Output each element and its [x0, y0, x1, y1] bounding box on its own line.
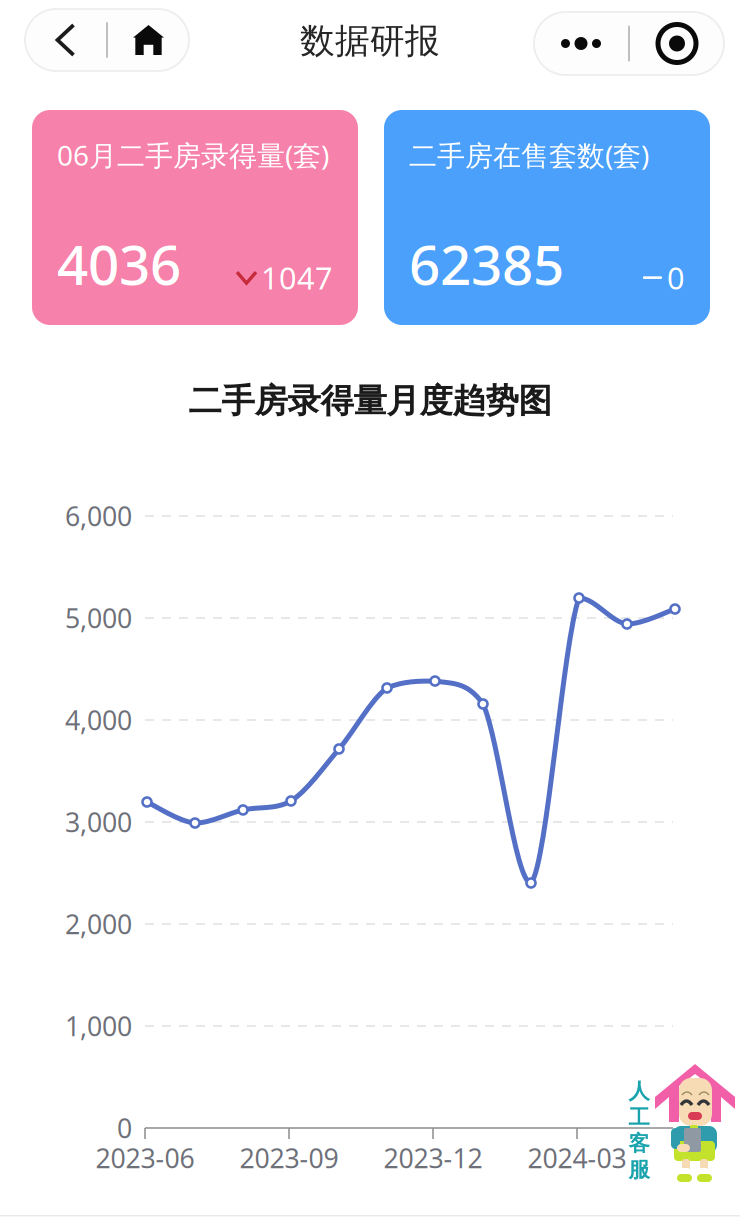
button[interactable]: 返回上一页 — [25, 9, 189, 71]
staticText: 2024-03 — [527, 1140, 626, 1176]
staticText: 6,000 — [65, 498, 132, 534]
staticText: 2,000 — [65, 906, 132, 942]
staticText: 0 — [117, 1110, 132, 1146]
button[interactable]: 人工客服 — [627, 1064, 735, 1182]
staticText: 二手房录得量月度趋势图 — [188, 380, 551, 421]
staticText: 2023-06 — [95, 1140, 194, 1176]
staticText: 4,000 — [65, 702, 132, 738]
staticText: 人 — [628, 1078, 649, 1104]
staticText: 1047 — [261, 257, 333, 298]
staticText: 5,000 — [65, 600, 132, 636]
staticText: 二手房在售套数(套) — [409, 136, 649, 174]
staticText: 06月二手房录得量(套) — [57, 136, 329, 174]
staticText: 2023-09 — [239, 1140, 338, 1176]
staticText: 2023-12 — [383, 1140, 482, 1176]
staticText: 0 — [667, 257, 685, 298]
staticText: 62385 — [409, 227, 564, 300]
staticText: 1,000 — [65, 1008, 132, 1044]
staticText: 服 — [628, 1157, 649, 1183]
staticText: 客 — [628, 1130, 649, 1157]
staticText: 数据研报 — [300, 20, 440, 62]
staticText: 3,000 — [65, 804, 132, 840]
staticText: 4036 — [57, 227, 181, 300]
staticText: 工 — [628, 1104, 649, 1130]
button[interactable]: 更多功能 — [534, 12, 724, 75]
